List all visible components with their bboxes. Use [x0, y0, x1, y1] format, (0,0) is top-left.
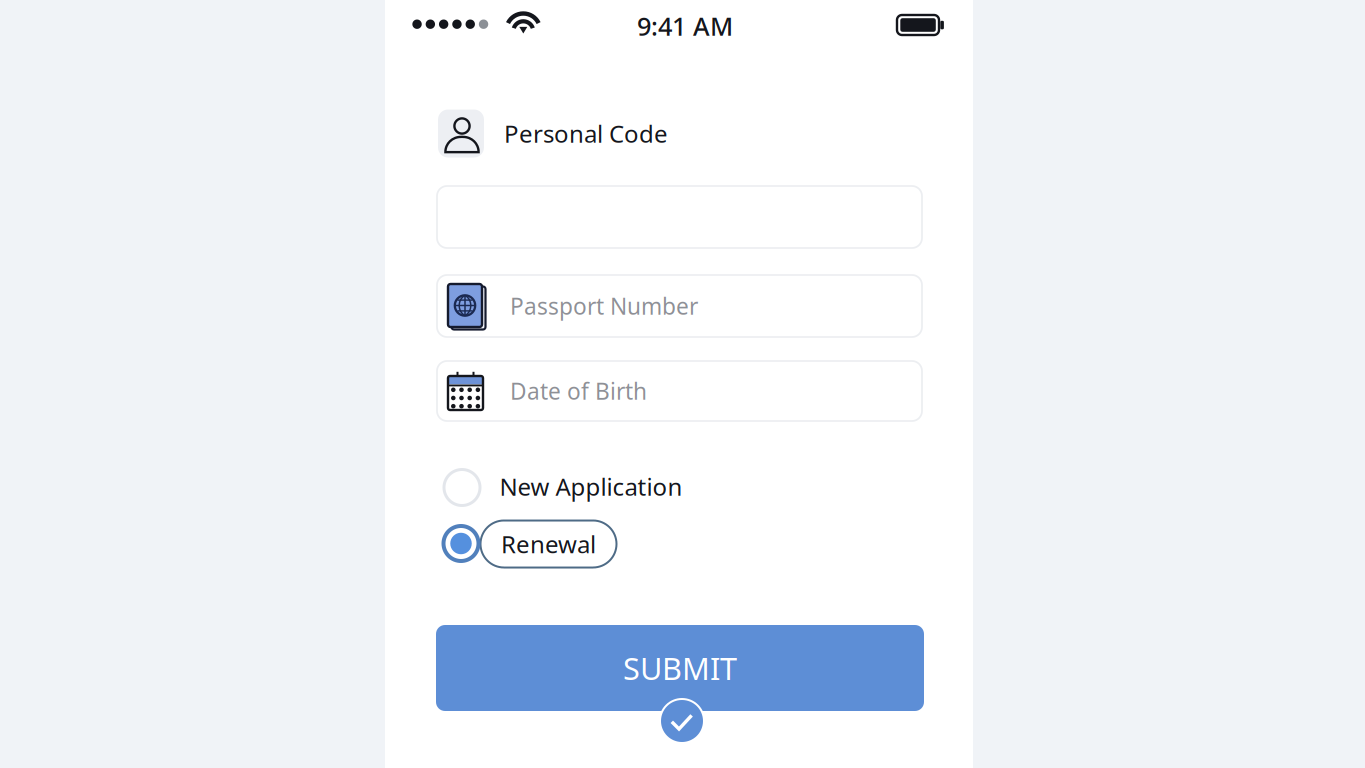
button[interactable]: Passport Number: [437, 275, 922, 337]
button[interactable]: Renewal: [441, 520, 641, 567]
button[interactable]: Personal Code: [438, 109, 923, 157]
staticText: Personal Code: [504, 118, 668, 149]
button[interactable]: Confirm: [658, 697, 706, 745]
staticText: 9:41 AM: [637, 9, 733, 43]
staticText: Date of Birth: [510, 376, 647, 406]
button[interactable]: Date of Birth: [437, 361, 922, 421]
staticText: Passport Number: [510, 291, 698, 321]
button[interactable]: New Application: [442, 468, 927, 506]
staticText: New Application: [499, 471, 682, 502]
button[interactable]: SUBMIT: [436, 625, 924, 711]
button[interactable]: [437, 186, 922, 248]
staticText: SUBMIT: [623, 648, 737, 688]
staticText: Renewal: [501, 528, 596, 560]
